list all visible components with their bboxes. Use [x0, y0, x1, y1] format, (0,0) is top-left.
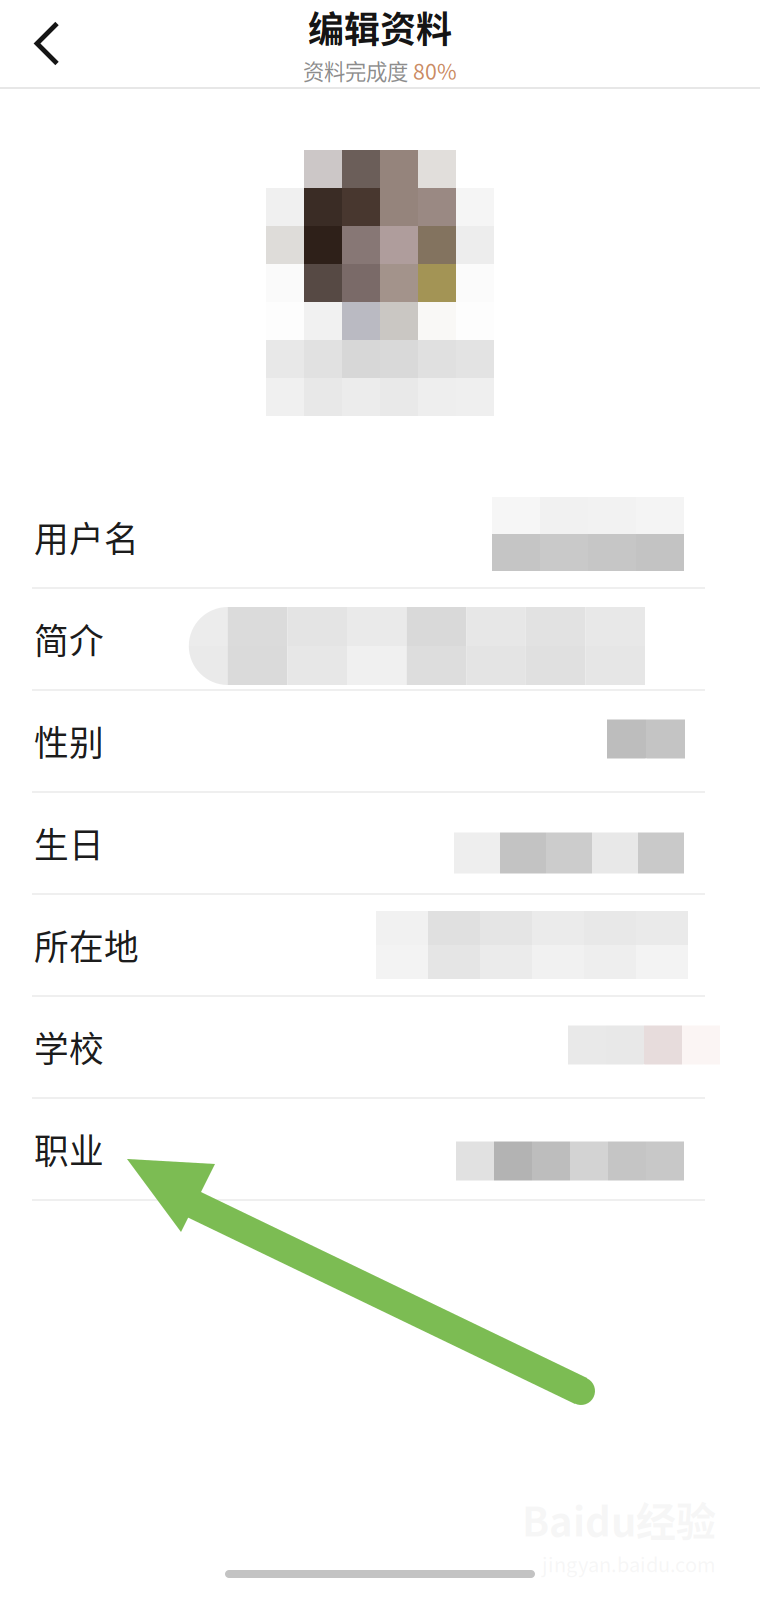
- button[interactable]: 性别: [0, 691, 760, 793]
- button[interactable]: 用户名: [0, 487, 760, 589]
- staticText: 用户名: [34, 512, 139, 562]
- button[interactable]: 生日: [0, 793, 760, 895]
- button[interactable]: Back: [0, 0, 96, 87]
- staticText: Baidu经验: [522, 1490, 716, 1548]
- staticText: 简介: [34, 614, 104, 664]
- staticText: 职业: [34, 1124, 104, 1174]
- staticText: 资料完成度: [303, 55, 413, 86]
- button[interactable]: Change profile photo: [266, 150, 494, 416]
- button[interactable]: 简介: [0, 589, 760, 691]
- staticText: 所在地: [34, 920, 139, 970]
- staticText: 性别: [34, 716, 104, 766]
- staticText: 学校: [34, 1022, 104, 1072]
- button[interactable]: 学校: [0, 997, 760, 1099]
- button[interactable]: 职业: [0, 1099, 760, 1201]
- staticText: 80%: [413, 55, 457, 86]
- staticText: 生日: [34, 818, 104, 868]
- button[interactable]: 所在地: [0, 895, 760, 997]
- staticText: 编辑资料: [308, 1, 452, 53]
